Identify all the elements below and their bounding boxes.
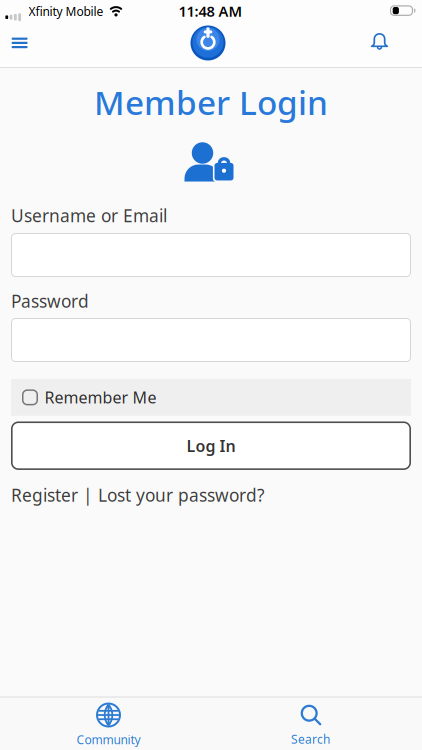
staticText: Community bbox=[76, 731, 140, 747]
button[interactable]: Log In bbox=[11, 421, 411, 470]
staticText: Member Login bbox=[94, 80, 328, 124]
staticText: Password bbox=[11, 289, 89, 312]
button[interactable]: Remember Me bbox=[11, 379, 411, 416]
button[interactable]: Menu bbox=[3, 26, 37, 60]
staticText: Lost your password? bbox=[98, 483, 265, 506]
staticText: 11:48 AM bbox=[178, 1, 242, 21]
button[interactable]: Notifications bbox=[362, 24, 396, 58]
staticText: Register bbox=[11, 483, 78, 506]
staticText: Xfinity Mobile bbox=[28, 3, 103, 19]
button[interactable]: Community bbox=[48, 701, 168, 749]
button[interactable]: Search bbox=[250, 701, 370, 749]
staticText: | bbox=[78, 483, 98, 506]
staticText: Username or Email bbox=[11, 204, 167, 227]
button[interactable]: Register bbox=[11, 483, 78, 506]
staticText: Search bbox=[291, 731, 330, 747]
button[interactable]: Home bbox=[190, 25, 225, 60]
staticText: Remember Me bbox=[44, 387, 156, 408]
staticText: Log In bbox=[186, 435, 235, 456]
button[interactable]: Lost your password? bbox=[98, 483, 265, 506]
